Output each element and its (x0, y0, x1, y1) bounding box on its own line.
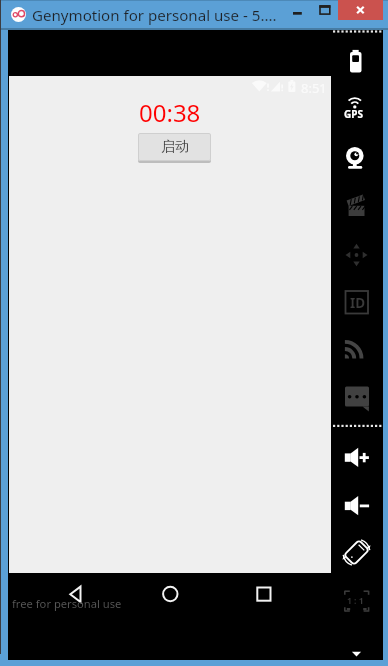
staticText: free for personal use (12, 596, 122, 611)
button[interactable] (338, 383, 376, 421)
staticText: 8:51 (301, 79, 327, 97)
button[interactable] (150, 580, 190, 608)
button[interactable] (338, 138, 376, 176)
staticText: Genymotion for personal use - 5.... (32, 5, 277, 26)
button[interactable] (338, 285, 376, 323)
button[interactable] (244, 580, 284, 608)
button[interactable]: 启动 (138, 133, 211, 161)
button[interactable] (338, 40, 376, 78)
button[interactable] (55, 580, 95, 608)
button[interactable] (288, 4, 308, 22)
button[interactable] (338, 432, 376, 470)
button[interactable] (314, 4, 334, 22)
button[interactable] (338, 579, 376, 617)
staticText: GPS (344, 107, 363, 121)
button[interactable] (338, 530, 376, 568)
staticText: 启动 (161, 138, 189, 156)
staticText: ID (350, 294, 366, 312)
button[interactable] (338, 481, 376, 519)
staticText: 00:38 (139, 96, 201, 124)
button[interactable] (338, 187, 376, 225)
button[interactable] (338, 0, 383, 20)
button[interactable] (338, 89, 376, 127)
staticText: 1 : 1 (347, 595, 364, 607)
button[interactable] (338, 334, 376, 372)
button[interactable] (338, 236, 376, 274)
